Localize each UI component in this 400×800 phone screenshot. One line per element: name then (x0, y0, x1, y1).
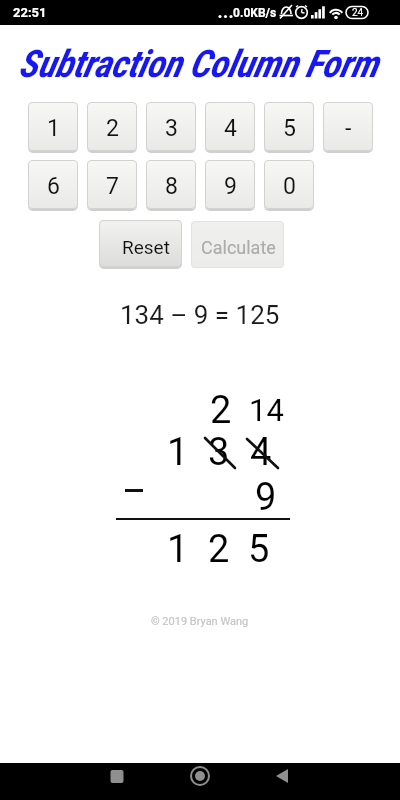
staticText: 134 – 9 = 125 (120, 300, 280, 330)
staticText: 4 (250, 430, 272, 475)
staticText: 1 (167, 430, 189, 475)
staticText: Subtraction Column Form (18, 42, 378, 87)
staticText: 6 (47, 173, 60, 200)
staticText: © 2019 Bryan Wang (151, 615, 249, 628)
button[interactable]: 5 (264, 102, 314, 151)
staticText: 2 (210, 388, 232, 433)
button[interactable] (105, 764, 129, 788)
button[interactable] (269, 764, 293, 788)
button[interactable]: 8 (146, 160, 196, 209)
button[interactable]: 4 (205, 102, 255, 151)
staticText: 9 (255, 475, 277, 520)
staticText: 3 (165, 115, 178, 142)
staticText: 7 (106, 173, 119, 200)
button[interactable]: 2 (87, 102, 137, 151)
button[interactable]: Reset (99, 220, 182, 267)
button[interactable]: 9 (205, 160, 255, 209)
staticText: Calculate (201, 237, 276, 258)
staticText: 2 (208, 527, 230, 572)
staticText: 1 (47, 115, 60, 142)
staticText: - (345, 115, 352, 142)
staticText: 8 (165, 173, 178, 200)
button[interactable]: Calculate (191, 221, 284, 268)
button[interactable]: 7 (87, 160, 137, 209)
button[interactable]: - (323, 102, 373, 151)
staticText: 0 (283, 173, 296, 200)
staticText: 5 (248, 527, 270, 572)
staticText: 5 (283, 115, 296, 142)
button[interactable]: 3 (146, 102, 196, 151)
staticText: 9 (224, 173, 237, 200)
button[interactable]: 6 (28, 160, 78, 209)
staticText: Reset (122, 236, 170, 258)
staticText: 2 (106, 115, 119, 142)
staticText: 0.0KB/s (233, 6, 277, 20)
staticText: 3 (208, 430, 230, 475)
button[interactable] (188, 764, 212, 788)
button[interactable]: 0 (264, 160, 314, 209)
staticText: 14 (249, 392, 284, 428)
button[interactable]: 1 (28, 102, 78, 151)
staticText: 24 (352, 7, 364, 19)
staticText: 22:51 (13, 5, 47, 20)
staticText: 4 (224, 115, 237, 142)
staticText: 1 (167, 527, 189, 572)
